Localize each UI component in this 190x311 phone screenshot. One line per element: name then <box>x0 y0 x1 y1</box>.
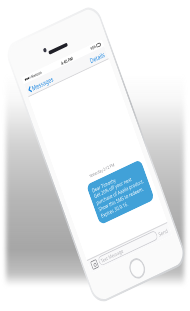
button[interactable]: Camera <box>90 259 99 270</box>
staticText: Send <box>157 227 169 237</box>
staticText: Dear Timothy Get 20% off your next purch… <box>91 164 150 220</box>
staticText: Messages <box>30 74 55 93</box>
staticText: Yesterday 2:12 PM <box>61 149 143 193</box>
button[interactable]: Messages <box>26 72 56 97</box>
button[interactable]: Home <box>126 255 148 282</box>
button[interactable]: Text Message <box>97 230 159 267</box>
staticText: Verizon <box>31 69 43 79</box>
staticText: Text Message <box>100 248 124 265</box>
button[interactable]: Send <box>157 227 169 237</box>
button[interactable]: Details <box>87 48 107 67</box>
button[interactable]: Dear Timothy Get 20% off your next purch… <box>86 159 155 225</box>
staticText: 4:40 PM <box>60 55 74 66</box>
staticText: Details <box>88 50 106 65</box>
staticText: 98% <box>90 44 97 51</box>
